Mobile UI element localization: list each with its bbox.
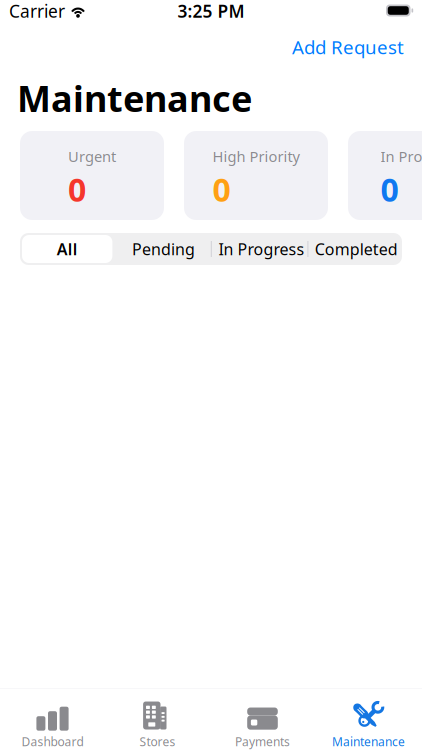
button[interactable]: Add Request — [274, 30, 404, 64]
staticText: Pending — [132, 238, 195, 260]
staticText: High Priority — [212, 146, 299, 166]
staticText: In Progress — [219, 238, 305, 260]
button[interactable]: Dashboard — [0, 704, 105, 750]
staticText: 0 — [68, 168, 86, 210]
button[interactable]: Maintenance — [315, 704, 422, 750]
staticText: 0 — [212, 168, 230, 210]
staticText: Stores — [139, 734, 175, 750]
button[interactable]: All — [20, 233, 114, 265]
staticText: Maintenance — [332, 734, 405, 750]
staticText: Completed — [315, 238, 398, 260]
staticText: 0 — [380, 168, 398, 210]
button[interactable]: Stores — [105, 704, 210, 750]
staticText: In Progress — [380, 146, 422, 166]
button[interactable]: Payments — [210, 704, 315, 750]
button[interactable]: Completed — [310, 233, 402, 265]
staticText: Add Request — [292, 35, 404, 59]
staticText: Carrier — [9, 0, 65, 22]
staticText: Maintenance — [17, 74, 252, 122]
staticText: Urgent — [68, 146, 116, 166]
staticText: 3:25 PM — [177, 0, 244, 22]
button[interactable]: Pending — [114, 233, 213, 265]
button[interactable]: In Progress — [213, 233, 310, 265]
staticText: All — [57, 238, 78, 260]
staticText: Dashboard — [21, 734, 83, 750]
staticText: Payments — [235, 734, 290, 750]
